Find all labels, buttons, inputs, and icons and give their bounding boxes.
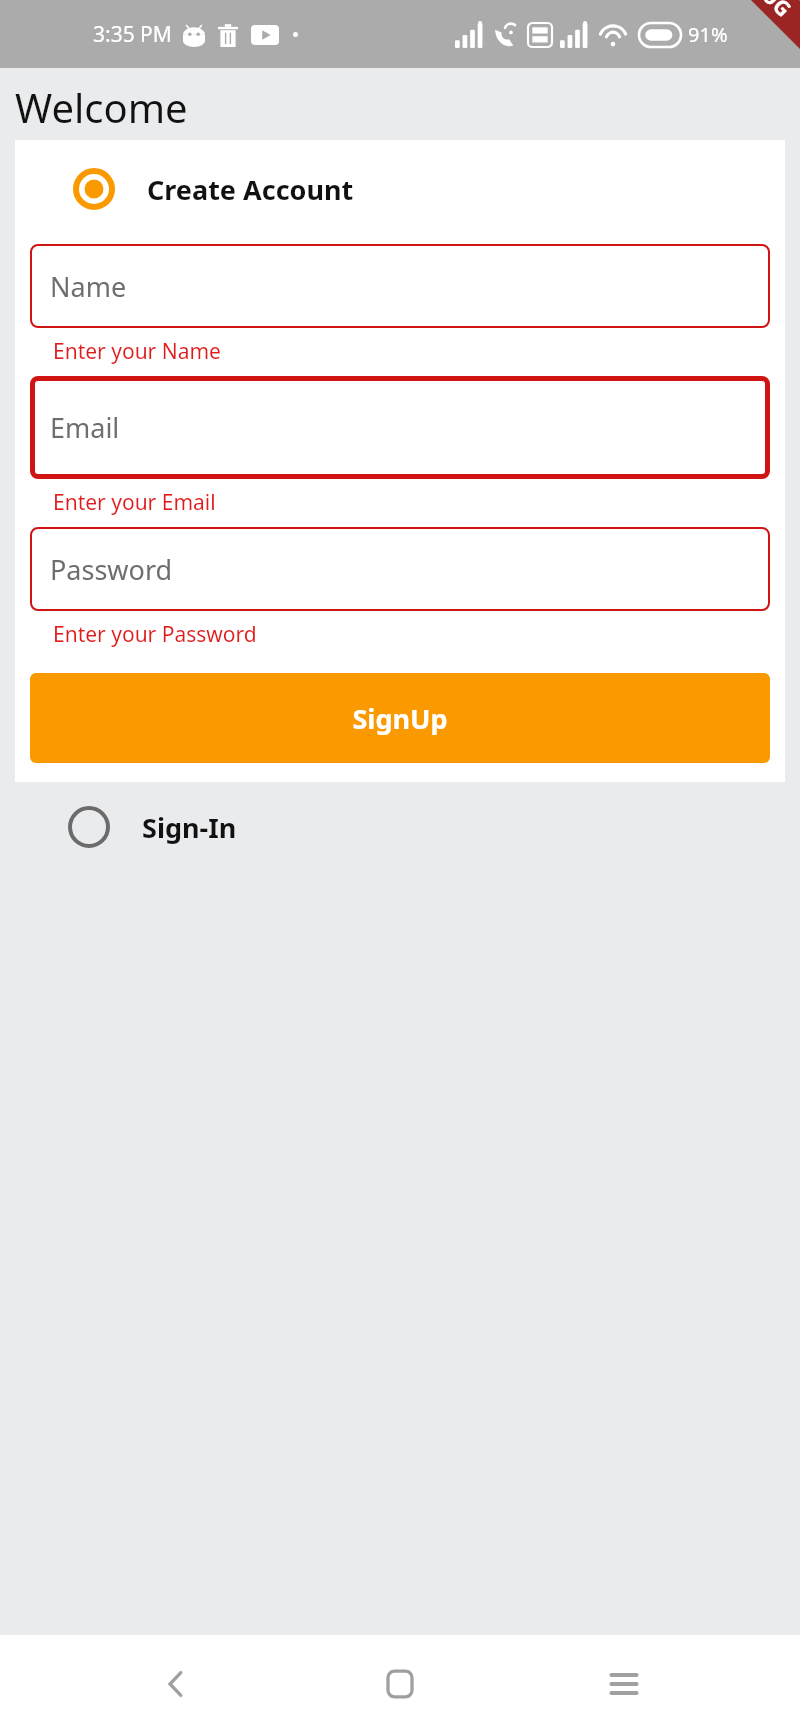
button[interactable]: Create Account	[15, 162, 785, 216]
staticText: 3:35 PM	[93, 20, 172, 49]
button[interactable]: Back	[128, 1636, 224, 1732]
staticText: Sign-In	[142, 809, 237, 846]
staticText: Enter your Password	[53, 620, 257, 649]
staticText: 91%	[688, 21, 728, 48]
staticText: Email	[50, 409, 120, 446]
staticText: Enter your Email	[53, 488, 216, 517]
button[interactable]: Recent apps	[576, 1636, 672, 1732]
staticText: DEBUG	[726, 0, 798, 24]
staticText: SignUp	[352, 700, 448, 737]
staticText: Welcome	[15, 80, 188, 134]
button[interactable]: Name	[30, 244, 770, 328]
button[interactable]: SignUp	[30, 673, 770, 763]
button[interactable]: Email	[30, 376, 770, 479]
staticText: Password	[50, 551, 173, 588]
button[interactable]: Home	[352, 1636, 448, 1732]
button[interactable]: Sign-In	[0, 800, 800, 854]
staticText: Enter your Name	[53, 337, 221, 366]
staticText: Create Account	[147, 171, 354, 208]
staticText: Name	[50, 268, 127, 305]
button[interactable]: Password	[30, 527, 770, 611]
